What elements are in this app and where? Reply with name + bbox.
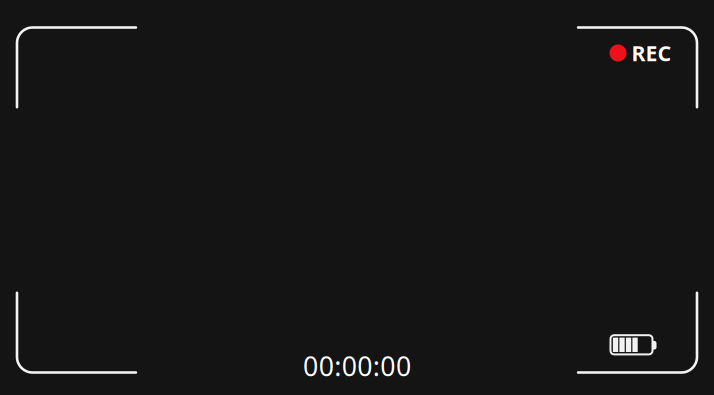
button[interactable]: REC (607, 35, 673, 71)
staticText: REC (631, 39, 671, 67)
staticText: 00:00:00 (303, 348, 411, 384)
